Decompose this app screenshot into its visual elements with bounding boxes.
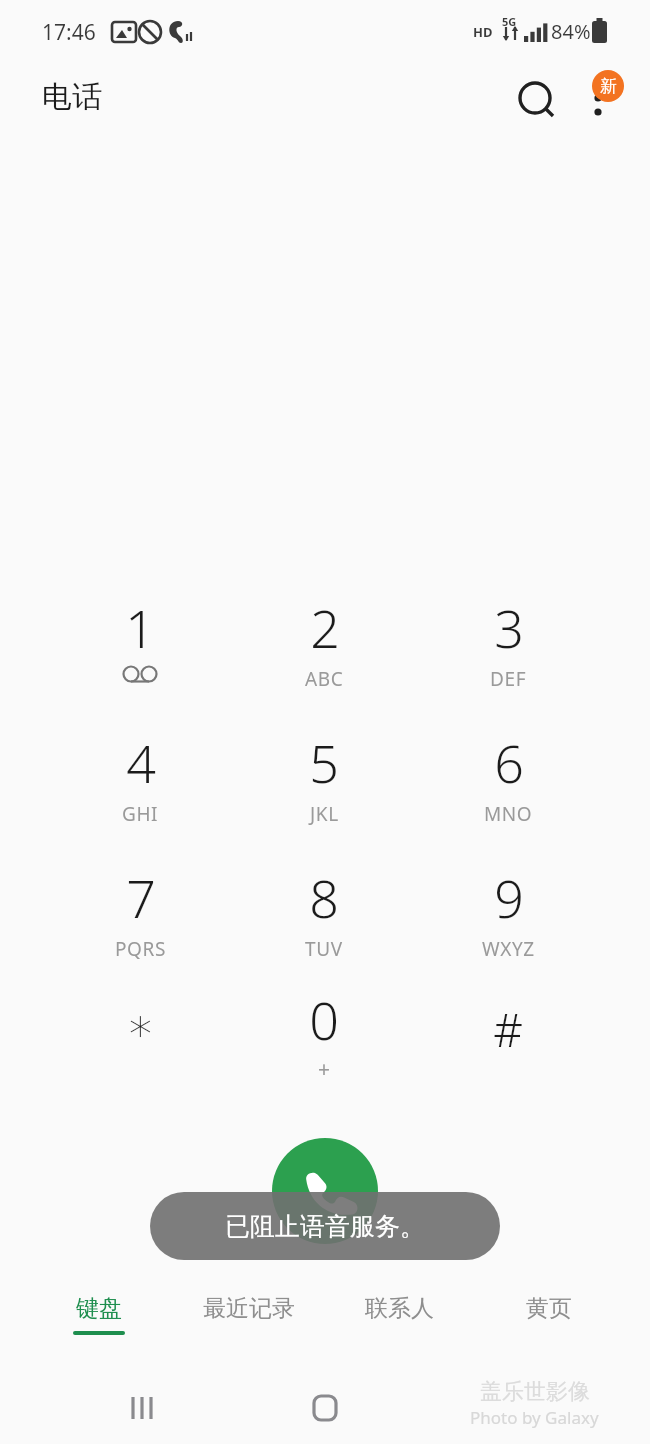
button[interactable]: More options: [572, 70, 628, 126]
button[interactable]: 8: [252, 862, 396, 980]
button[interactable]: Recents: [102, 1372, 182, 1444]
staticText: MNO: [484, 801, 533, 827]
staticText: 84%: [551, 18, 591, 45]
button[interactable]: 联系人: [327, 1290, 471, 1362]
button[interactable]: 9: [436, 862, 580, 980]
staticText: DEF: [490, 666, 527, 692]
staticText: 新: [600, 76, 617, 97]
button[interactable]: Home: [285, 1372, 365, 1444]
button[interactable]: 1: [68, 592, 212, 710]
staticText: 5G: [502, 14, 517, 29]
staticText: 7: [126, 862, 156, 933]
staticText: GHI: [122, 801, 159, 827]
staticText: 盖乐世影像: [480, 1378, 590, 1406]
button[interactable]: 3: [436, 592, 580, 710]
staticText: HD: [473, 23, 493, 41]
staticText: Photo by Galaxy: [470, 1406, 599, 1429]
staticText: #: [493, 998, 523, 1061]
button[interactable]: ∗: [68, 984, 212, 1102]
staticText: ABC: [305, 666, 344, 692]
staticText: 已阻止语音服务。: [225, 1211, 425, 1242]
staticText: 最近记录: [203, 1294, 295, 1323]
staticText: 黄页: [526, 1294, 572, 1323]
staticText: 6: [494, 727, 524, 798]
button[interactable]: 5: [252, 727, 396, 845]
staticText: PQRS: [115, 936, 166, 962]
button[interactable]: 6: [436, 727, 580, 845]
button[interactable]: Call: [272, 1138, 378, 1244]
button[interactable]: 2: [252, 592, 396, 710]
staticText: ∗: [126, 998, 155, 1052]
staticText: 4: [126, 727, 156, 798]
staticText: 联系人: [365, 1294, 434, 1323]
staticText: WXYZ: [482, 936, 535, 962]
button[interactable]: 键盘: [27, 1290, 171, 1362]
staticText: 17:46: [42, 18, 96, 47]
button[interactable]: Search: [506, 70, 568, 132]
staticText: 8: [309, 862, 339, 933]
staticText: TUV: [305, 936, 343, 962]
staticText: 1: [125, 592, 155, 663]
staticText: +: [318, 1055, 331, 1084]
button[interactable]: 黄页: [477, 1290, 621, 1362]
staticText: 2: [310, 592, 340, 663]
staticText: 3: [494, 592, 524, 663]
staticText: JKL: [310, 801, 339, 827]
staticText: 键盘: [76, 1294, 122, 1323]
button[interactable]: 0: [252, 984, 396, 1102]
button[interactable]: 最近记录: [177, 1290, 321, 1362]
button[interactable]: 4: [68, 727, 212, 845]
staticText: 0: [309, 984, 339, 1055]
staticText: 9: [494, 862, 524, 933]
staticText: 电话: [42, 78, 102, 116]
button[interactable]: 7: [68, 862, 212, 980]
staticText: 5: [309, 727, 339, 798]
button[interactable]: #: [436, 984, 580, 1102]
